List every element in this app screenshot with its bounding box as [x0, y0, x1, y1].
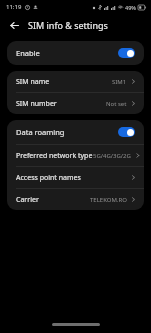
staticText: Data roaming [16, 127, 118, 137]
button[interactable]: Access point names [7, 167, 144, 188]
staticText: Not set [106, 100, 127, 108]
staticText: TELEKOM.RO [90, 196, 127, 204]
staticText: 49% [125, 4, 136, 11]
staticText: SIM info & settings [28, 19, 108, 31]
button[interactable]: Preferred network type [7, 145, 144, 166]
staticText: Access point names [16, 173, 81, 183]
staticText: Carrier [16, 195, 39, 205]
staticText: SIM name [16, 77, 50, 87]
staticText: 11:19 [6, 3, 22, 11]
staticText: Preferred network type [16, 151, 93, 161]
staticText: SIM1 [112, 78, 127, 86]
button[interactable]: SIM number [7, 93, 144, 114]
button[interactable]: Carrier [7, 189, 144, 210]
button[interactable]: Back [6, 17, 23, 34]
staticText: Enable [16, 48, 118, 58]
button[interactable]: SIM name [7, 71, 144, 92]
staticText: SIM number [16, 99, 57, 109]
button[interactable]: Enable [7, 41, 144, 65]
button[interactable]: Data roaming [7, 120, 144, 144]
staticText: 5G/4G/3G/2G (Auto) [93, 152, 134, 160]
